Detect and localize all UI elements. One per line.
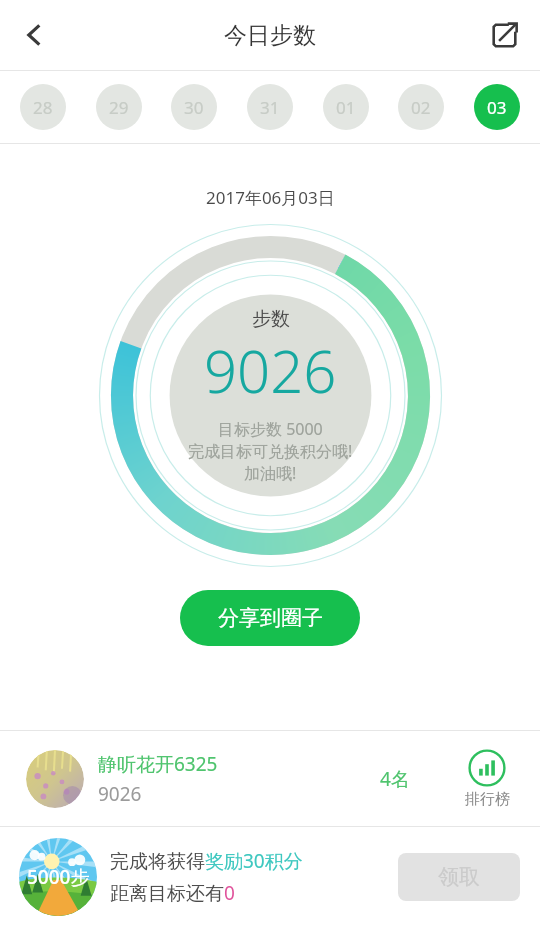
button[interactable]: 02: [398, 84, 444, 130]
button[interactable]: 领取: [398, 853, 520, 901]
staticText: 4名: [380, 766, 410, 792]
staticText: 01: [336, 96, 356, 119]
staticText: 9026: [204, 331, 337, 410]
button[interactable]: 29: [96, 84, 142, 130]
button[interactable]: 分享到圈子: [180, 590, 360, 646]
button[interactable]: 01: [323, 84, 369, 130]
staticText: 29: [109, 96, 129, 119]
button[interactable]: Share: [476, 7, 532, 63]
staticText: 5000步: [27, 864, 90, 890]
staticText: 领取: [438, 864, 480, 890]
staticText: 03: [487, 96, 507, 119]
button[interactable]: 排行榜: [456, 749, 518, 809]
staticText: 排行榜: [465, 790, 510, 809]
staticText: 加油哦!: [244, 462, 297, 484]
staticText: 9026: [98, 781, 142, 807]
staticText: 完成目标可兑换积分哦!: [188, 440, 353, 462]
button[interactable]: 静听花开6325: [0, 731, 540, 826]
staticText: 静听花开6325: [98, 751, 218, 777]
staticText: 02: [411, 96, 431, 119]
button[interactable]: 30: [171, 84, 217, 130]
staticText: 完成将获得奖励30积分: [110, 848, 303, 874]
button[interactable]: 28: [20, 84, 66, 130]
staticText: 30: [184, 96, 204, 119]
staticText: 分享到圈子: [218, 605, 323, 631]
staticText: 步数: [252, 307, 290, 331]
button[interactable]: 31: [247, 84, 293, 130]
button[interactable]: 03: [474, 84, 520, 130]
staticText: 2017年06月03日: [206, 186, 335, 209]
staticText: 目标步数 5000: [218, 418, 323, 440]
button[interactable]: Back: [6, 7, 62, 63]
staticText: 28: [33, 96, 53, 119]
staticText: 31: [260, 96, 280, 119]
staticText: 今日步数: [224, 21, 316, 50]
staticText: 距离目标还有0: [110, 880, 235, 906]
